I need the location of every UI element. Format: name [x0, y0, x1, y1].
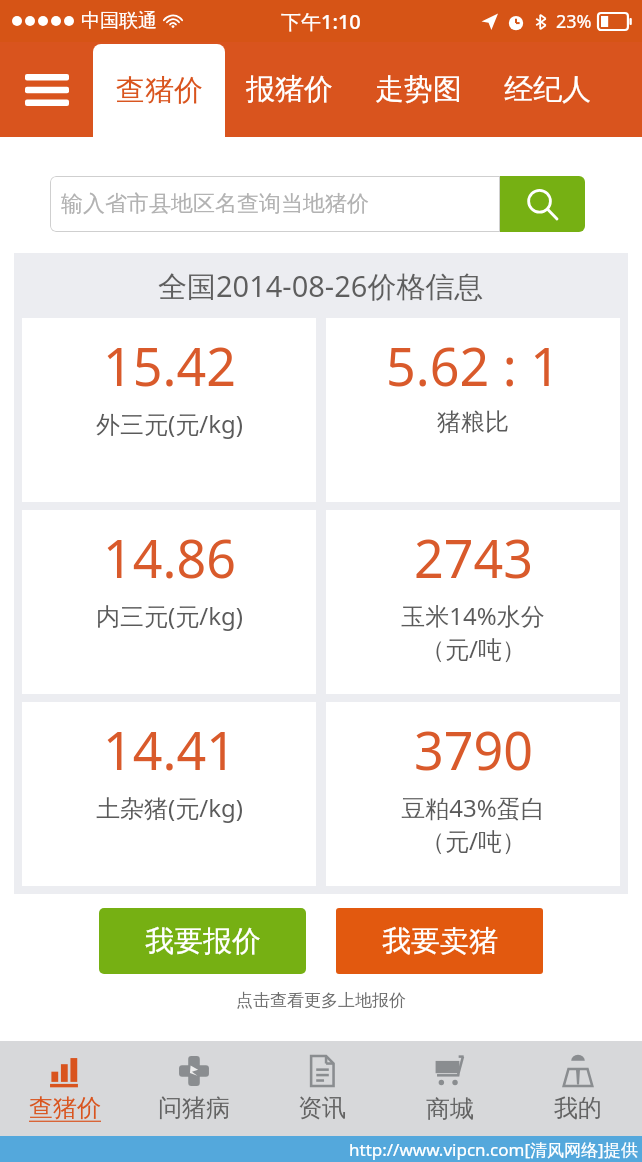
staticText: 商城 — [426, 1094, 474, 1124]
staticText: 内三元(元/kg) — [96, 599, 243, 632]
button[interactable]: Search — [500, 176, 585, 232]
button[interactable]: 输入省市县地区名查询当地猪价 — [50, 176, 500, 232]
button[interactable]: 经纪人 — [483, 42, 612, 137]
staticText: 下午1:10 — [281, 8, 361, 35]
staticText: 报猪价 — [246, 71, 333, 108]
staticText: 2743 — [414, 522, 533, 593]
button[interactable]: 14.41 — [22, 702, 316, 886]
button[interactable]: 资讯 — [258, 1041, 386, 1136]
staticText: 玉米14%水分 — [401, 599, 545, 632]
staticText: 我要报价 — [145, 923, 261, 960]
staticText: 问猪病 — [158, 1093, 230, 1123]
button[interactable]: Menu — [24, 67, 70, 113]
staticText: 猪粮比 — [437, 407, 509, 437]
button[interactable]: 5.62 : 1 — [326, 318, 620, 502]
staticText: 输入省市县地区名查询当地猪价 — [61, 190, 369, 218]
staticText: 3790 — [414, 714, 533, 785]
staticText: 资讯 — [298, 1093, 346, 1123]
button[interactable]: 我的 — [514, 1041, 642, 1136]
staticText: 14.86 — [103, 522, 236, 593]
button[interactable]: 问猪病 — [129, 1041, 258, 1136]
staticText: 中国联通 — [81, 9, 157, 33]
staticText: （元/吨） — [421, 632, 526, 665]
button[interactable]: 3790 — [326, 702, 620, 886]
staticText: 查猪价 — [116, 72, 203, 109]
button[interactable]: 15.42 — [22, 318, 316, 502]
staticText: 23% — [556, 9, 592, 34]
button[interactable]: 查猪价 — [0, 1041, 129, 1136]
button[interactable]: 报猪价 — [225, 42, 354, 137]
staticText: 5.62 : 1 — [386, 330, 560, 401]
staticText: 15.42 — [103, 330, 236, 401]
staticText: 豆粕43%蛋白 — [401, 791, 545, 824]
staticText: 外三元(元/kg) — [96, 407, 243, 440]
button[interactable]: 14.86 — [22, 510, 316, 694]
button[interactable]: 查猪价 — [93, 44, 225, 137]
staticText: 点击查看更多上地报价 — [236, 990, 406, 1011]
staticText: 我要卖猪 — [382, 923, 498, 960]
staticText: http://www.vipcn.com[清风网络]提供 — [349, 1138, 638, 1161]
staticText: 走势图 — [375, 71, 462, 108]
staticText: 我的 — [554, 1093, 602, 1123]
button[interactable]: 走势图 — [354, 42, 483, 137]
staticText: 查猪价 — [29, 1093, 101, 1123]
button[interactable]: 2743 — [326, 510, 620, 694]
staticText: 全国2014-08-26价格信息 — [158, 266, 484, 306]
button[interactable]: 我要报价 — [99, 908, 306, 974]
button[interactable]: 商城 — [386, 1041, 514, 1136]
staticText: 经纪人 — [504, 71, 591, 108]
button[interactable]: 我要卖猪 — [336, 908, 543, 974]
staticText: 土杂猪(元/kg) — [96, 791, 243, 824]
staticText: 14.41 — [103, 714, 236, 785]
staticText: （元/吨） — [421, 824, 526, 857]
